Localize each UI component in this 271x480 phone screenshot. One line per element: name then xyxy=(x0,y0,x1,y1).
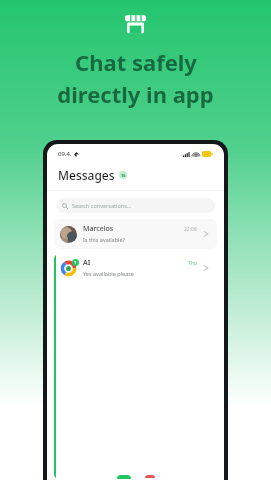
staticText: Thu xyxy=(188,260,197,267)
staticText: Yes available please xyxy=(83,270,134,277)
staticText: 1 xyxy=(74,260,77,265)
staticText: AI xyxy=(83,258,91,268)
staticText: directly in app xyxy=(57,79,214,109)
staticText: Messages xyxy=(58,167,115,183)
staticText: 16 xyxy=(121,173,126,178)
staticText: Is this available? xyxy=(83,236,125,243)
staticText: Search conversations... xyxy=(72,202,132,209)
staticText: Chat safely xyxy=(75,47,197,77)
button[interactable]: Marcelos xyxy=(54,219,217,249)
button[interactable]: 1 xyxy=(54,253,217,480)
staticText: 22:08 xyxy=(184,226,197,233)
button[interactable]: Search conversations... xyxy=(56,198,215,213)
staticText: Marcelos xyxy=(83,224,114,234)
staticText: 09.4. xyxy=(58,150,72,158)
